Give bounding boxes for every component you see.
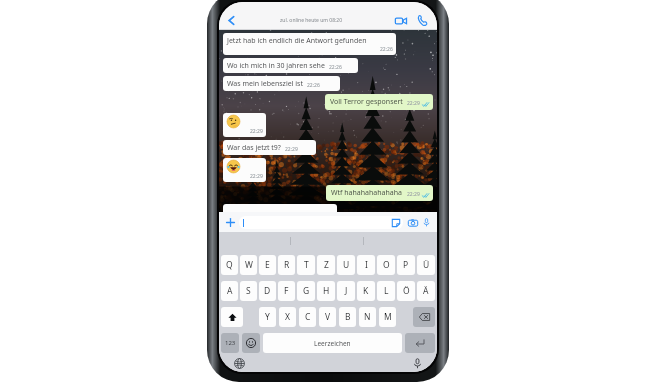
button[interactable]: L [377,281,395,301]
button[interactable]: O [377,255,395,275]
staticText: Ä [423,285,429,297]
staticText: Voll Terror gesponsert [330,97,403,107]
button[interactable]: Camera [406,216,419,229]
button[interactable]: V [319,307,336,327]
button[interactable]: Jetzt hab ich endlich die Antwort gefund… [223,33,396,55]
staticText: Jetzt hab ich endlich die Antwort gefund… [227,36,367,46]
button[interactable]: Was mein lebensziel ist [223,76,340,91]
staticText: 22:26 [329,64,342,71]
button[interactable]: Voice message [420,216,433,229]
staticText: E [265,259,270,271]
staticText: 22:29 [250,173,263,180]
button[interactable]: J [337,281,355,301]
button[interactable]: T [297,255,315,275]
staticText: 22:29 [250,128,263,135]
button[interactable]: S [240,281,257,301]
staticText: H [323,285,330,297]
button[interactable]: E [259,255,276,275]
button[interactable]: Z [317,255,335,275]
button[interactable]: Wtf hahahahahahaha [326,185,433,201]
staticText: War das jetzt t9? [227,143,281,153]
staticText: M [384,311,392,323]
button[interactable]: N [359,307,376,327]
staticText: D [264,285,271,297]
button[interactable]: Emoji [242,333,260,353]
button[interactable]: Ü [417,255,435,275]
button[interactable]: M [379,307,396,327]
button[interactable]: Video call [391,11,410,30]
button[interactable]: 22:29 [223,158,266,182]
button[interactable]: Sticker [391,218,401,228]
button[interactable]: Y [259,307,276,327]
staticText: W [245,259,253,271]
button[interactable]: Change keyboard [232,356,246,370]
staticText: I [365,259,368,271]
button[interactable]: F [278,281,295,301]
staticText: G [303,285,310,297]
button[interactable]: A [221,281,238,301]
staticText: V [325,311,331,323]
button[interactable]: Dictation [410,356,424,370]
button[interactable]: Shift [221,307,243,327]
staticText: P [403,259,409,271]
staticText: K [363,285,369,297]
button[interactable]: 123 [221,333,239,353]
staticText: Wo ich mich in 30 jahren sehe [227,61,325,71]
button[interactable]: Ö [397,281,415,301]
button[interactable]: P [397,255,415,275]
button[interactable]: Wo ich mich in 30 jahren sehe [223,58,358,73]
staticText: L [384,285,389,297]
button[interactable]: Voll Terror gesponsert [325,94,433,110]
button[interactable]: D [259,281,276,301]
staticText: 22:29 [407,191,420,198]
button[interactable]: Sticker [239,216,403,229]
staticText: S [246,285,251,297]
button[interactable]: Q [221,255,238,275]
staticText: Q [226,259,233,271]
button[interactable]: Backspace [413,307,435,327]
button[interactable]: K [357,281,375,301]
staticText: R [284,259,290,271]
staticText: 22:29 [407,100,420,107]
button[interactable]: Voice call [413,11,432,30]
staticText: 22:26 [380,46,393,53]
staticText: zul. online heute um 08:20 [280,17,343,24]
button[interactable]: 22:29 [223,113,266,137]
button[interactable]: B [339,307,356,327]
button[interactable]: G [297,281,315,301]
staticText: Ü [423,259,430,271]
staticText: J [345,285,348,297]
button[interactable]: H [317,281,335,301]
button[interactable]: Ä [417,281,435,301]
staticText: 22:26 [307,82,320,89]
button[interactable]: War das jetzt t9? [223,140,316,155]
staticText: X [285,311,290,323]
button[interactable]: Leerzeichen [263,333,402,353]
button[interactable] [223,204,337,212]
staticText: U [343,259,350,271]
staticText: Wtf hahahahahahaha [331,188,403,198]
staticText: B [345,311,351,323]
button[interactable]: C [299,307,316,327]
button[interactable]: I [357,255,375,275]
staticText: Z [324,259,329,271]
staticText: F [284,285,289,297]
button[interactable]: W [240,255,257,275]
staticText: Y [265,311,270,323]
staticText: 123 [225,339,236,347]
staticText: Ö [403,285,410,297]
button[interactable]: Return [405,333,435,353]
staticText: C [305,311,311,323]
button[interactable]: Attach [223,215,237,229]
button[interactable]: Back [223,12,239,28]
button[interactable]: X [279,307,296,327]
button[interactable]: R [278,255,295,275]
staticText: Was mein lebensziel ist [227,79,303,89]
button[interactable]: U [337,255,355,275]
staticText: A [227,285,233,297]
staticText: O [383,259,390,271]
staticText: N [364,311,371,323]
